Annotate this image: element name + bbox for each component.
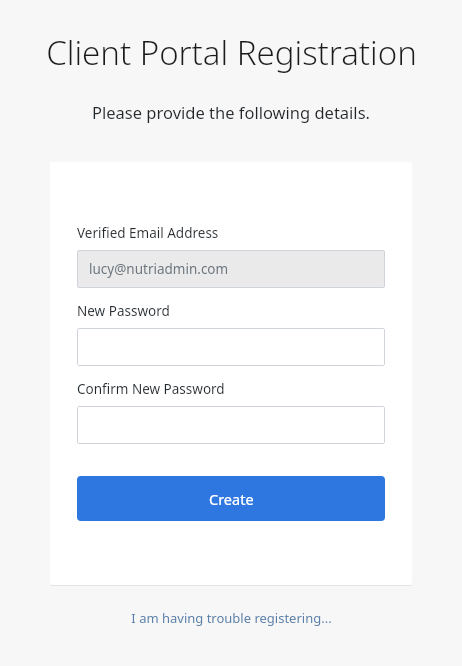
staticText: lucy@nutriadmin.com [89, 260, 229, 278]
button[interactable] [77, 406, 385, 444]
staticText: Create [209, 489, 254, 509]
staticText: Client Portal Registration [46, 30, 417, 75]
button[interactable]: Create [77, 476, 385, 521]
button[interactable]: lucy@nutriadmin.com [77, 250, 385, 288]
staticText: New Password [77, 302, 170, 320]
button[interactable]: I am having trouble registering... [125, 607, 338, 629]
staticText: Please provide the following details. [92, 101, 370, 123]
staticText: I am having trouble registering... [131, 609, 332, 627]
staticText: Confirm New Password [77, 380, 225, 398]
button[interactable] [77, 328, 385, 366]
staticText: Verified Email Address [77, 224, 219, 242]
